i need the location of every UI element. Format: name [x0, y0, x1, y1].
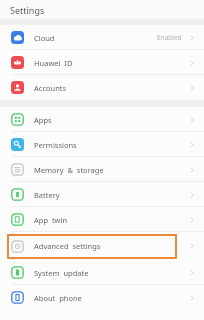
staticText: Apps	[34, 115, 52, 125]
button[interactable]: Apps	[0, 107, 204, 132]
staticText: Cloud	[34, 33, 55, 43]
staticText: Battery	[34, 190, 60, 200]
button[interactable]: Memory & storage	[0, 157, 204, 182]
button[interactable]: System update	[0, 260, 204, 285]
staticText: Settings	[10, 4, 45, 16]
staticText: System update	[34, 268, 89, 278]
other: Open	[188, 116, 196, 124]
staticText: Accounts	[34, 83, 67, 93]
staticText: Enabled	[157, 33, 182, 42]
button[interactable]: Battery	[0, 182, 204, 207]
staticText: Memory & storage	[34, 165, 104, 175]
button[interactable]: Advanced settings	[0, 232, 204, 260]
other: Open	[188, 59, 196, 67]
staticText: Huawei ID	[34, 58, 73, 68]
staticText: Advanced settings	[34, 241, 101, 251]
other: Open	[188, 141, 196, 149]
button[interactable]: Huawei ID	[0, 50, 204, 75]
other: Open	[188, 166, 196, 174]
button[interactable]: Cloud	[0, 25, 204, 50]
other: Open	[188, 269, 196, 277]
other: Open	[188, 34, 196, 42]
button[interactable]: Accounts	[0, 75, 204, 100]
staticText: About phone	[34, 293, 82, 303]
staticText: Permissions	[34, 140, 77, 150]
staticText: App twin	[34, 215, 68, 225]
button[interactable]: About phone	[0, 285, 204, 310]
button[interactable]: App twin	[0, 207, 204, 232]
other: Open	[188, 84, 196, 92]
other: Open	[188, 294, 196, 302]
other: Open	[188, 216, 196, 224]
other: Open	[188, 242, 196, 250]
other: Open	[188, 191, 196, 199]
button[interactable]: Permissions	[0, 132, 204, 157]
